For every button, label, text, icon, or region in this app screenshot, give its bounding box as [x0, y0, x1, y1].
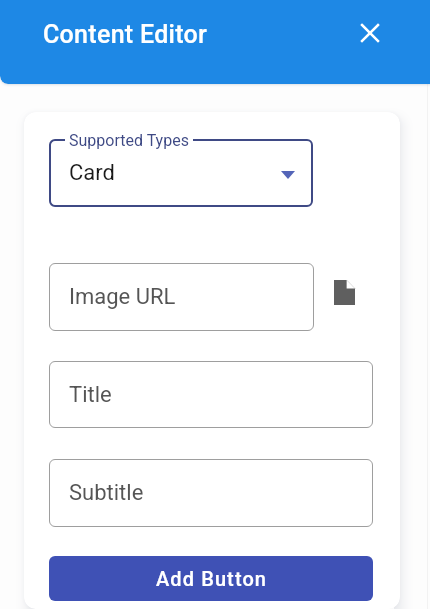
button[interactable]: Pick file [325, 273, 363, 311]
button[interactable]: Title [49, 361, 373, 428]
button[interactable]: Card [49, 139, 313, 207]
staticText: Subtitle [69, 480, 144, 506]
staticText: Card [69, 160, 115, 186]
staticText: Title [69, 382, 112, 408]
button[interactable]: Add Button [49, 556, 373, 601]
button[interactable]: Close [347, 11, 392, 56]
staticText: Add Button [156, 567, 268, 590]
button[interactable]: Subtitle [49, 459, 373, 527]
staticText: Supported Types [69, 131, 189, 150]
staticText: Image URL [69, 284, 176, 310]
button[interactable]: Image URL [49, 263, 314, 331]
staticText: Content Editor [43, 20, 208, 49]
